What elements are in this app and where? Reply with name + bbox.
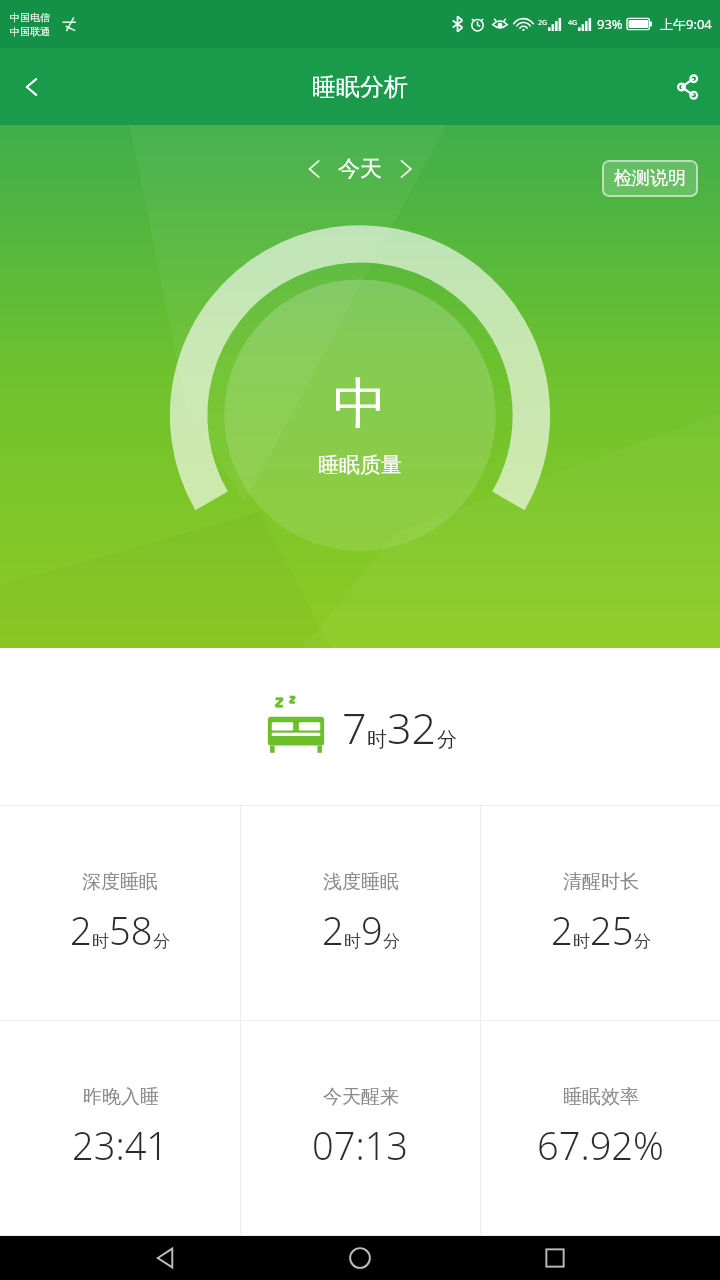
staticText: 睡眠分析: [312, 72, 408, 102]
button[interactable]: 清醒时长: [481, 806, 720, 1020]
staticText: 今天醒来: [323, 1085, 399, 1109]
staticText: 上午9:04: [660, 15, 712, 33]
staticText: 7: [342, 698, 367, 757]
staticText: 9: [361, 904, 383, 956]
staticText: 时: [573, 931, 590, 952]
staticText: 中: [333, 370, 387, 438]
staticText: 睡眠效率: [563, 1085, 639, 1109]
button[interactable]: 浅度睡眠: [241, 806, 480, 1020]
staticText: 2G: [538, 18, 548, 28]
button[interactable]: Home: [330, 1236, 390, 1280]
button[interactable]: Recents: [525, 1236, 585, 1280]
staticText: 深度睡眠: [82, 870, 158, 894]
staticText: 中国电信: [10, 11, 50, 24]
staticText: 07:13: [312, 1119, 409, 1171]
button[interactable]: Back: [135, 1236, 195, 1280]
staticText: 清醒时长: [563, 870, 639, 894]
button[interactable]: 昨晚入睡: [0, 1021, 240, 1235]
staticText: 2: [322, 904, 344, 956]
staticText: 时: [367, 727, 387, 752]
staticText: 分: [383, 931, 400, 952]
staticText: 中国联通: [10, 25, 50, 38]
staticText: 分: [153, 931, 170, 952]
staticText: 2: [551, 904, 573, 956]
staticText: 时: [344, 931, 361, 952]
button[interactable]: Share: [656, 55, 720, 119]
staticText: 分: [634, 931, 651, 952]
staticText: 时: [92, 931, 109, 952]
staticText: 23:41: [72, 1119, 169, 1171]
staticText: 睡眠质量: [318, 452, 402, 478]
button[interactable]: 睡眠效率: [481, 1021, 720, 1235]
button[interactable]: Back: [0, 55, 64, 119]
staticText: 检测说明: [614, 167, 686, 190]
staticText: 58: [109, 904, 153, 956]
button[interactable]: 检测说明: [602, 160, 698, 197]
button[interactable]: 深度睡眠: [0, 806, 240, 1020]
staticText: 67.92%: [537, 1119, 664, 1171]
staticText: 昨晚入睡: [83, 1085, 159, 1109]
button[interactable]: 今天醒来: [241, 1021, 480, 1235]
staticText: 2: [70, 904, 92, 956]
staticText: 今天: [338, 155, 382, 183]
staticText: 32: [387, 698, 437, 757]
staticText: 分: [437, 727, 457, 752]
staticText: 4G: [568, 18, 578, 28]
staticText: 93%: [597, 15, 623, 33]
button[interactable]: 今天: [306, 155, 414, 183]
staticText: 浅度睡眠: [323, 870, 399, 894]
staticText: 25: [590, 904, 634, 956]
